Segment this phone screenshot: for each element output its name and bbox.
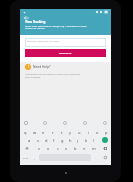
staticText: q xyxy=(24,130,27,135)
button[interactable]: m xyxy=(89,144,98,152)
button[interactable]: ?123 xyxy=(20,154,31,161)
staticText: ! xyxy=(28,65,29,69)
button[interactable]: t xyxy=(57,128,66,136)
staticText: d xyxy=(45,138,48,143)
button[interactable]: w xyxy=(30,128,39,136)
staticText: w xyxy=(33,130,37,135)
staticText: CONTINUE xyxy=(59,52,72,55)
button[interactable]: j xyxy=(74,136,82,144)
staticText: Enter your reservation code(PNR) + lastn… xyxy=(25,24,87,30)
button[interactable]: Stickers xyxy=(63,121,67,125)
button[interactable]: Clipboard xyxy=(83,121,87,125)
button[interactable]: Booking Reference Number* xyxy=(25,38,106,47)
staticText: Booking Reference Number* xyxy=(27,39,60,42)
button[interactable]: Search xyxy=(43,121,47,125)
staticText: Notification will be shown if there is a… xyxy=(25,72,81,78)
staticText: e xyxy=(42,130,45,135)
button[interactable]: o xyxy=(93,128,102,136)
button[interactable]: Enter xyxy=(102,137,108,143)
button[interactable]: u xyxy=(75,128,84,136)
staticText: k xyxy=(85,138,88,143)
button[interactable]: p xyxy=(102,128,111,136)
button[interactable]: x xyxy=(44,144,53,152)
button[interactable]: q xyxy=(20,128,30,136)
staticText: p xyxy=(105,130,108,135)
staticText: g xyxy=(61,138,64,143)
staticText: y xyxy=(69,130,72,135)
staticText: r xyxy=(52,130,54,135)
button[interactable]: f xyxy=(50,136,58,144)
staticText: z xyxy=(38,146,40,151)
button[interactable]: h xyxy=(66,136,74,144)
staticText: s xyxy=(37,138,39,143)
button[interactable]: e xyxy=(39,128,48,136)
staticText: t xyxy=(61,130,63,135)
staticText: b xyxy=(74,146,77,151)
staticText: o xyxy=(96,130,99,135)
button[interactable]: Language xyxy=(99,154,111,161)
staticText: l xyxy=(93,138,95,143)
button[interactable]: v xyxy=(62,144,71,152)
staticText: h xyxy=(69,138,72,143)
button[interactable]: Back xyxy=(22,14,31,22)
button[interactable]: Google xyxy=(24,121,28,125)
button[interactable]: b xyxy=(71,144,80,152)
staticText: v xyxy=(65,146,68,151)
staticText: Need Help? xyxy=(33,65,51,69)
staticText: ?123 xyxy=(23,156,29,159)
button[interactable]: c xyxy=(53,144,62,152)
staticText: j xyxy=(77,138,79,143)
button[interactable]: k xyxy=(82,136,90,144)
staticText: u xyxy=(78,130,81,135)
staticText: m xyxy=(92,146,96,151)
button[interactable]: Backspace xyxy=(98,144,111,152)
staticText: x xyxy=(47,146,50,151)
staticText: a xyxy=(28,138,31,143)
staticText: n xyxy=(83,146,86,151)
button[interactable]: Emoji xyxy=(31,154,38,161)
staticText: c xyxy=(57,146,59,151)
button[interactable]: d xyxy=(42,136,50,144)
button[interactable]: s xyxy=(34,136,42,144)
button[interactable]: r xyxy=(48,128,57,136)
button[interactable]: i xyxy=(84,128,93,136)
staticText: , xyxy=(34,156,35,160)
button[interactable]: n xyxy=(80,144,89,152)
staticText: f xyxy=(53,138,55,143)
button[interactable]: Shift xyxy=(20,144,34,152)
staticText: View Booking xyxy=(25,20,46,24)
button[interactable]: y xyxy=(66,128,75,136)
staticText: i xyxy=(88,130,90,135)
button[interactable]: g xyxy=(58,136,66,144)
button[interactable]: CONTINUE xyxy=(25,49,106,57)
button[interactable]: a xyxy=(25,136,34,144)
button[interactable]: Settings xyxy=(103,121,107,125)
button[interactable]: z xyxy=(34,144,44,152)
button[interactable]: l xyxy=(90,136,98,144)
staticText: . xyxy=(95,156,96,160)
